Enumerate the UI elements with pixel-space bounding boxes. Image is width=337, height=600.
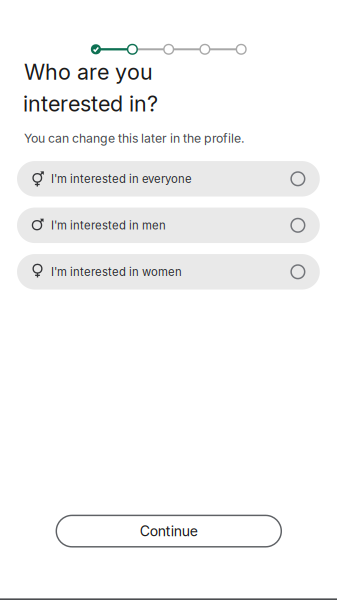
button[interactable]: Continue — [56, 515, 281, 547]
staticText: I'm interested in women — [51, 265, 182, 279]
staticText: You can change this later in the profile… — [24, 131, 245, 146]
button[interactable]: I'm interested in everyone — [17, 161, 320, 197]
button[interactable]: I'm interested in men — [17, 208, 320, 243]
staticText: I'm interested in men — [51, 218, 166, 232]
staticText: interested in? — [23, 90, 158, 117]
button[interactable]: I'm interested in women — [17, 254, 320, 290]
staticText: Continue — [140, 523, 198, 540]
staticText: I'm interested in everyone — [51, 172, 192, 186]
staticText: Who are you — [24, 59, 153, 85]
